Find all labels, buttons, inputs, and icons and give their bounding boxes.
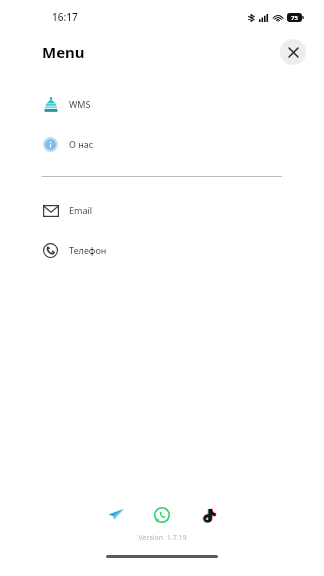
- button[interactable]: Email: [0, 190, 324, 230]
- staticText: Version 1.7.19: [138, 533, 187, 543]
- staticText: 75: [291, 14, 298, 22]
- staticText: О нас: [69, 138, 94, 150]
- button[interactable]: WhatsApp: [149, 502, 175, 528]
- button[interactable]: О нас: [0, 124, 324, 164]
- button[interactable]: TikTok: [195, 502, 221, 528]
- button[interactable]: WMS: [0, 84, 324, 124]
- staticText: Email: [69, 204, 93, 216]
- staticText: Телефон: [69, 244, 107, 256]
- staticText: Menu: [42, 42, 85, 62]
- staticText: WMS: [69, 98, 91, 110]
- button[interactable]: Телефон: [0, 230, 324, 270]
- button[interactable]: Close: [280, 39, 306, 65]
- button[interactable]: Telegram: [103, 502, 129, 528]
- staticText: 16:17: [52, 10, 78, 24]
